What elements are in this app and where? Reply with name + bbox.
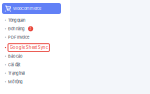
staticText: Cài đặt (8, 62, 20, 67)
button[interactable]: Đơn hàng (3, 25, 68, 32)
button[interactable]: Báo cáo (3, 52, 68, 60)
staticText: WooCommerce (13, 6, 41, 11)
button[interactable]: Mở rộng (3, 78, 68, 85)
button[interactable]: PDF Invoice (3, 33, 68, 41)
button[interactable]: Trạng thái (3, 69, 68, 77)
staticText: Báo cáo (8, 54, 22, 59)
staticText: Đơn hàng (8, 26, 24, 31)
button[interactable]: WooCommerce (2, 3, 61, 14)
staticText: Tổng quan (8, 18, 25, 23)
button[interactable]: Google Sheet Sync (3, 44, 68, 51)
staticText: Mở rộng (8, 79, 22, 84)
staticText: PDF Invoice (8, 35, 29, 40)
staticText: Google Sheet Sync (10, 45, 48, 50)
staticText: 3 (30, 27, 32, 30)
button[interactable]: Cài đặt (3, 61, 68, 68)
staticText: Trạng thái (8, 71, 25, 76)
button[interactable]: Tổng quan (3, 16, 68, 24)
